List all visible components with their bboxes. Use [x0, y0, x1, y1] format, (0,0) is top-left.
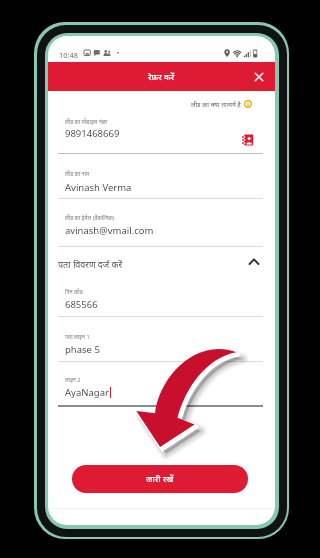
- staticText: लीड का मोबाइल नंबर: [65, 118, 108, 125]
- staticText: 9891468669: [65, 127, 120, 140]
- staticText: रेफ़र करें: [148, 71, 175, 83]
- staticText: लीड का ईमेल (वैकल्पिक): [65, 214, 115, 221]
- button[interactable]: पता विवरण दर्ज करें: [48, 255, 275, 273]
- staticText: AyaNagar: [65, 386, 109, 399]
- button[interactable]: जारी रखें: [72, 465, 248, 493]
- staticText: Avinash Verma: [65, 181, 132, 194]
- staticText: पिन कोड: [65, 288, 83, 295]
- staticText: पता विवरण दर्ज करें: [58, 258, 123, 270]
- button[interactable]: Close: [251, 69, 267, 85]
- button[interactable]: लीड का क्या तात्पर्य है: [191, 98, 252, 110]
- staticText: जारी रखें: [146, 473, 174, 485]
- staticText: पता लाइन 1: [65, 333, 90, 340]
- staticText: avinash@vmail.com: [65, 224, 154, 237]
- staticText: लीड का नाम: [65, 170, 90, 177]
- button[interactable]: Pick contact: [242, 134, 254, 146]
- staticText: 10:48: [59, 50, 78, 60]
- staticText: phase 5: [65, 343, 100, 356]
- staticText: 685566: [65, 298, 98, 311]
- staticText: लाइन 2: [65, 376, 81, 383]
- staticText: लीड का क्या तात्पर्य है: [191, 100, 241, 109]
